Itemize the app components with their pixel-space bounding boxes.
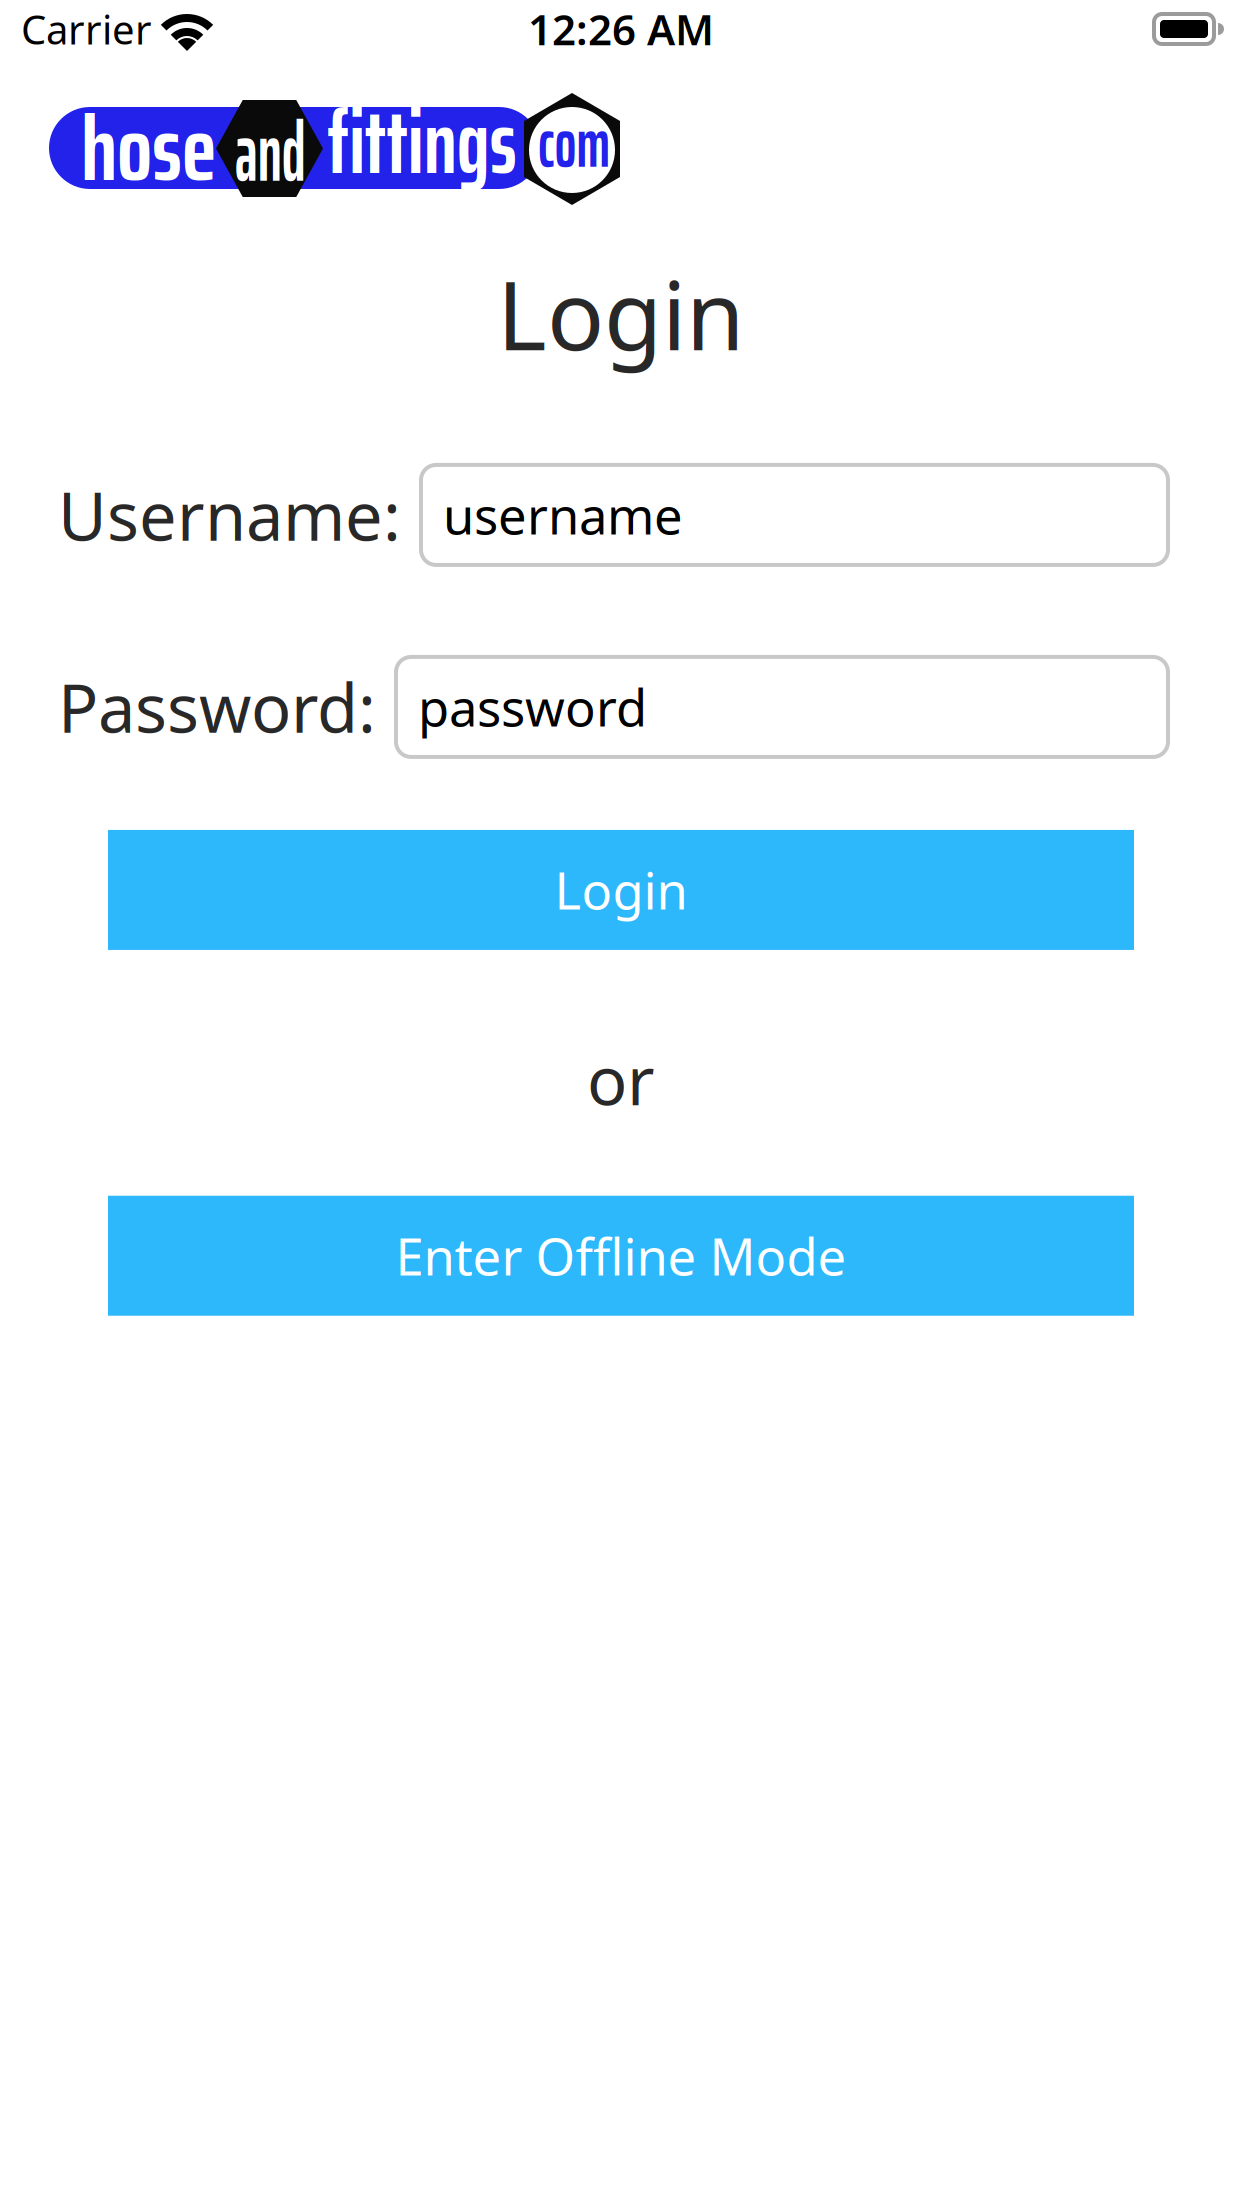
staticText: Carrier bbox=[21, 2, 152, 56]
staticText: or bbox=[587, 1034, 655, 1125]
staticText: and bbox=[235, 87, 332, 217]
staticText: hose bbox=[81, 77, 216, 220]
button[interactable]: Enter Offline Mode bbox=[108, 1196, 1134, 1316]
staticText: com bbox=[538, 88, 628, 197]
staticText: Enter Offline Mode bbox=[395, 1221, 846, 1290]
button[interactable]: Login bbox=[108, 830, 1134, 950]
staticText: Login bbox=[554, 855, 687, 924]
staticText: 12:26 AM bbox=[528, 0, 714, 58]
staticText: Username: bbox=[58, 469, 401, 560]
staticText: password bbox=[418, 672, 647, 741]
staticText: Login bbox=[497, 249, 745, 378]
button[interactable]: password bbox=[394, 655, 1170, 759]
staticText: username bbox=[443, 480, 683, 549]
staticText: fittings bbox=[327, 73, 529, 211]
staticText: Password: bbox=[58, 661, 376, 752]
button[interactable]: username bbox=[419, 463, 1170, 567]
